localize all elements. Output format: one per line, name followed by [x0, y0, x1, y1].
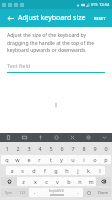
staticText: q [5, 156, 9, 163]
button[interactable]: Settings [80, 133, 96, 142]
button[interactable]: 9 [89, 144, 100, 153]
button[interactable]: 8 [78, 144, 89, 153]
button[interactable]: k [83, 166, 94, 175]
button[interactable]: 6 [56, 144, 67, 153]
staticText: 1 [5, 145, 9, 152]
button[interactable]: s [17, 166, 28, 175]
button[interactable]: Backspace [96, 177, 111, 186]
staticText: k [87, 167, 90, 174]
staticText: Sym [5, 190, 12, 195]
button[interactable]: v [52, 177, 63, 186]
staticText: f [44, 167, 46, 174]
staticText: RESET [94, 16, 106, 21]
button[interactable]: 0 [100, 144, 111, 153]
button[interactable]: Resize keyboard handle [51, 100, 60, 109]
button[interactable]: m [85, 177, 96, 186]
staticText: r [38, 156, 41, 163]
button[interactable]: 1 [1, 144, 12, 153]
staticText: , [34, 189, 36, 196]
staticText: x [34, 178, 37, 185]
button[interactable]: Emoji [83, 188, 94, 197]
button[interactable]: h [61, 166, 72, 175]
staticText: Text field [7, 62, 31, 69]
staticText: 8 [82, 145, 86, 152]
staticText: Adjust keyboard size [18, 13, 86, 23]
staticText: 0 [104, 145, 108, 152]
button[interactable]: j [72, 166, 83, 175]
staticText: 5 [49, 145, 53, 152]
button[interactable]: d [28, 166, 39, 175]
staticText: 2 [16, 145, 20, 152]
button[interactable]: Done [94, 188, 111, 197]
staticText: u [71, 156, 75, 163]
button[interactable]: o [89, 155, 100, 164]
staticText: 123 [19, 190, 26, 195]
staticText: a [10, 167, 14, 174]
staticText: b [67, 178, 71, 185]
button[interactable]: Navigate up [4, 12, 16, 24]
staticText: 12:54 [99, 2, 110, 7]
button[interactable]: c [41, 177, 52, 186]
staticText: n [78, 178, 82, 185]
staticText: 3 [27, 145, 31, 152]
button[interactable]: w [12, 155, 23, 164]
button[interactable]: e [23, 155, 34, 164]
staticText: h [65, 167, 69, 174]
button[interactable]: Space [40, 188, 72, 197]
staticText: w [15, 156, 20, 163]
button[interactable]: l [94, 166, 105, 175]
staticText: l [99, 167, 101, 174]
button[interactable]: g [50, 166, 61, 175]
staticText: j [77, 167, 79, 174]
staticText: 4 [38, 145, 42, 152]
button[interactable]: t [45, 155, 56, 164]
staticText: English(US) [49, 189, 64, 193]
button[interactable]: Text field [7, 62, 105, 73]
staticText: c [45, 178, 48, 185]
button[interactable]: 2 [12, 144, 23, 153]
button[interactable]: a [6, 166, 17, 175]
staticText: m [88, 178, 94, 185]
button[interactable]: RESET [92, 14, 108, 23]
button[interactable]: y [56, 155, 67, 164]
staticText: Done [98, 190, 108, 195]
staticText: s [21, 167, 24, 174]
button[interactable]: 3 [23, 144, 34, 153]
staticText: 81% [91, 2, 98, 7]
button[interactable]: q [1, 155, 12, 164]
staticText: d [32, 167, 36, 174]
staticText: y [60, 156, 63, 163]
button[interactable]: Hide keyboard [96, 133, 112, 142]
button[interactable]: Keyboard [0, 133, 16, 142]
button[interactable]: p [100, 155, 111, 164]
button[interactable]: u [67, 155, 78, 164]
staticText: . [77, 189, 79, 196]
button[interactable]: 5 [45, 144, 56, 153]
button[interactable]: Voice input [32, 133, 48, 142]
button[interactable]: . [72, 188, 83, 197]
button[interactable]: b [63, 177, 74, 186]
staticText: o [93, 156, 97, 163]
staticText: 7 [71, 145, 75, 152]
button[interactable]: 4 [34, 144, 45, 153]
button[interactable]: Resize [64, 133, 80, 142]
button[interactable]: z [17, 177, 29, 186]
staticText: e [27, 156, 31, 163]
staticText: t [50, 156, 52, 163]
staticText: g [54, 167, 58, 174]
button[interactable]: Sym [1, 188, 16, 197]
button[interactable]: , [29, 188, 40, 197]
button[interactable]: 7 [67, 144, 78, 153]
staticText: 9 [93, 145, 97, 152]
button[interactable]: 123 [16, 188, 29, 197]
button[interactable]: Clipboard [16, 133, 32, 142]
button[interactable]: f [39, 166, 50, 175]
button[interactable]: n [74, 177, 85, 186]
button[interactable]: Emoji [48, 133, 64, 142]
button[interactable]: i [78, 155, 89, 164]
staticText: Adjust the size of the keyboard by dragg… [7, 32, 105, 53]
button[interactable]: r [34, 155, 45, 164]
staticText: i [83, 156, 85, 163]
button[interactable]: x [29, 177, 41, 186]
button[interactable]: Shift [1, 177, 17, 186]
